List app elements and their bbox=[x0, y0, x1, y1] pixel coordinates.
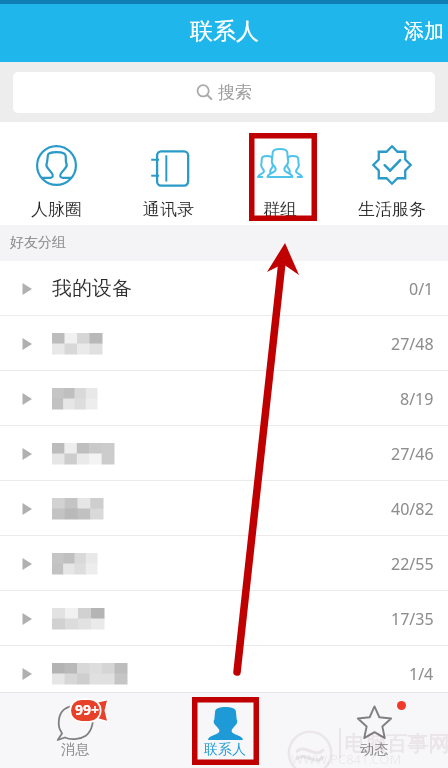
staticText: 联系人 bbox=[190, 17, 259, 46]
button[interactable]: 1/4 bbox=[0, 646, 448, 701]
staticText: 17/35 bbox=[391, 608, 434, 630]
button[interactable]: 搜索 bbox=[13, 72, 435, 113]
staticText: 27/46 bbox=[391, 443, 434, 465]
button[interactable]: 生活服务 bbox=[336, 122, 448, 225]
staticText: 99+ bbox=[75, 700, 100, 719]
staticText: 人脉圈 bbox=[31, 199, 82, 220]
staticText: 联系人 bbox=[204, 741, 246, 759]
staticText: 动态 bbox=[360, 741, 388, 759]
staticText: 好友分组 bbox=[10, 234, 66, 252]
button[interactable]: 我的设备 bbox=[0, 261, 448, 316]
button[interactable]: Messages bbox=[0, 692, 150, 768]
staticText: 8/19 bbox=[400, 388, 434, 410]
staticText: 我的设备 bbox=[52, 276, 132, 301]
staticText: 生活服务 bbox=[358, 199, 426, 220]
staticText: 通讯录 bbox=[143, 199, 194, 220]
button[interactable]: 群组 bbox=[224, 122, 336, 225]
button[interactable]: 27/48 bbox=[0, 316, 448, 371]
staticText: 消息 bbox=[61, 741, 89, 759]
button[interactable]: 27/46 bbox=[0, 426, 448, 481]
staticText: 22/55 bbox=[391, 553, 434, 575]
staticText: 0/1 bbox=[409, 278, 434, 300]
staticText: 搜索 bbox=[218, 82, 252, 103]
button[interactable]: 人脉圈 bbox=[0, 122, 112, 225]
staticText: WWW.PC841.COM bbox=[291, 750, 402, 768]
button[interactable]: Contacts bbox=[150, 692, 299, 768]
button[interactable]: Moments bbox=[299, 692, 448, 768]
staticText: 电脑百事网 bbox=[344, 731, 448, 757]
staticText: 40/82 bbox=[391, 498, 434, 520]
staticText: 27/48 bbox=[391, 333, 434, 355]
button[interactable]: 17/35 bbox=[0, 591, 448, 646]
button[interactable]: 22/55 bbox=[0, 536, 448, 591]
staticText: 群组 bbox=[263, 199, 297, 220]
button[interactable]: 8/19 bbox=[0, 371, 448, 426]
button[interactable]: 40/82 bbox=[0, 481, 448, 536]
staticText: 1/4 bbox=[409, 663, 434, 685]
button[interactable]: 通讯录 bbox=[112, 122, 224, 225]
button[interactable]: 添加 bbox=[392, 13, 448, 50]
staticText: 添加 bbox=[404, 19, 444, 44]
